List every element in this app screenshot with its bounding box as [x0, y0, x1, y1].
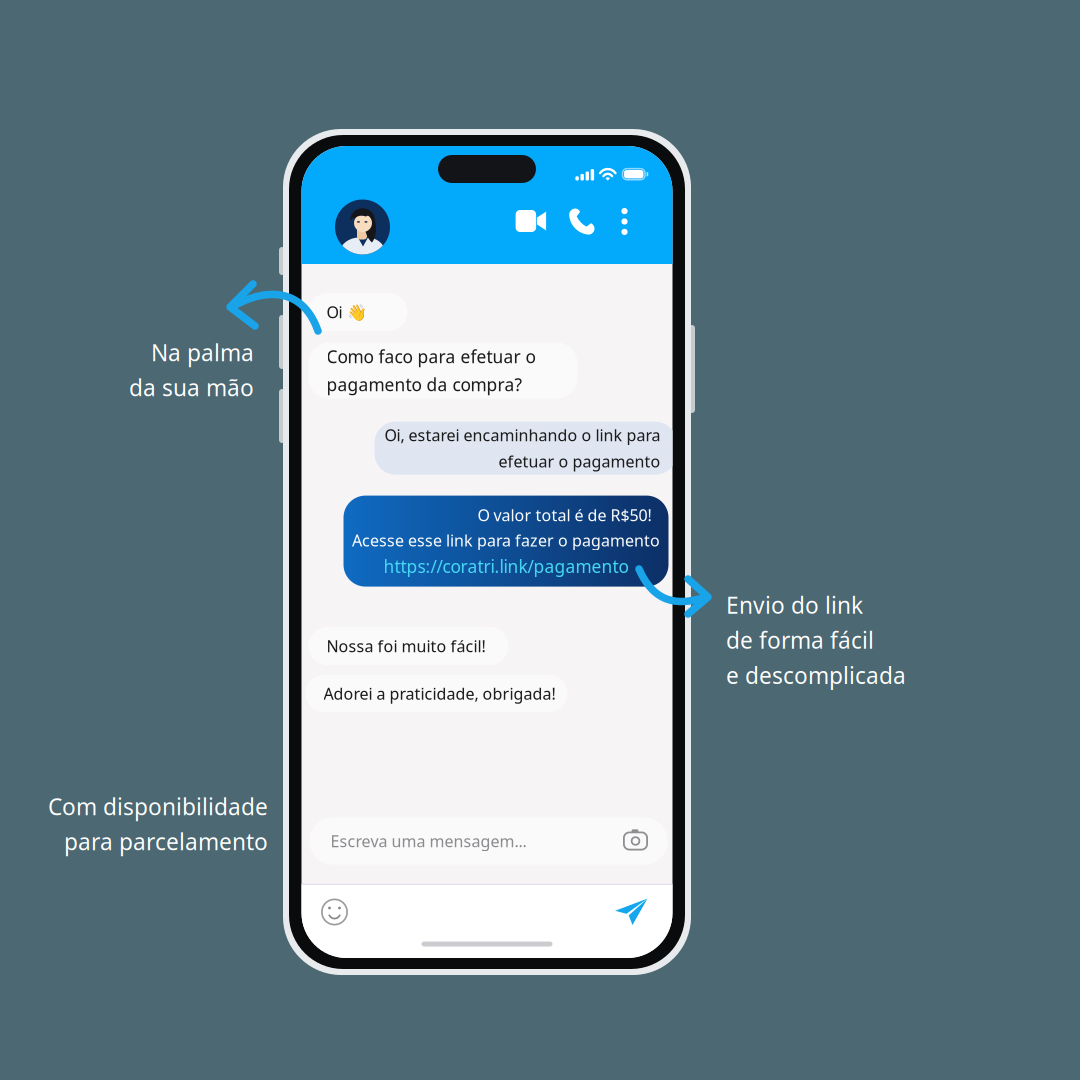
staticText: efetuar o pagamento [498, 451, 660, 472]
staticText: Como faco para efetuar o [326, 345, 535, 368]
staticText: Escreva uma mensagem... [330, 830, 526, 852]
staticText: e descomplicada [726, 660, 906, 690]
staticText: de forma fácil [726, 625, 874, 655]
staticText: da sua mão [129, 372, 254, 403]
staticText: Com disponibilidade [48, 791, 268, 821]
button[interactable]: More options [608, 200, 640, 242]
staticText: Oi, estarei encaminhando o link para [384, 424, 660, 446]
staticText: Oi 👋 [326, 301, 366, 323]
button[interactable]: Send [609, 890, 653, 934]
staticText: pagamento da compra? [326, 373, 522, 396]
staticText: Acesse esse link para fazer o pagamento [352, 530, 660, 551]
button[interactable]: Contact profile [335, 199, 390, 254]
staticText: para parcelamento [64, 826, 268, 857]
button[interactable]: Escreva uma mensagem... [309, 817, 667, 864]
staticText: https://coratri.link/pagamento [383, 555, 628, 578]
staticText: Na palma [151, 337, 254, 367]
staticText: Envio do link [726, 590, 863, 620]
button[interactable]: Video call [509, 200, 553, 242]
staticText: Adorei a praticidade, obrigada! [323, 683, 555, 704]
staticText: O valor total é de R$50! [477, 504, 651, 525]
button[interactable]: Emoji [312, 890, 356, 934]
staticText: Nossa foi muito fácil! [326, 635, 485, 657]
button[interactable]: Voice call [562, 200, 602, 242]
